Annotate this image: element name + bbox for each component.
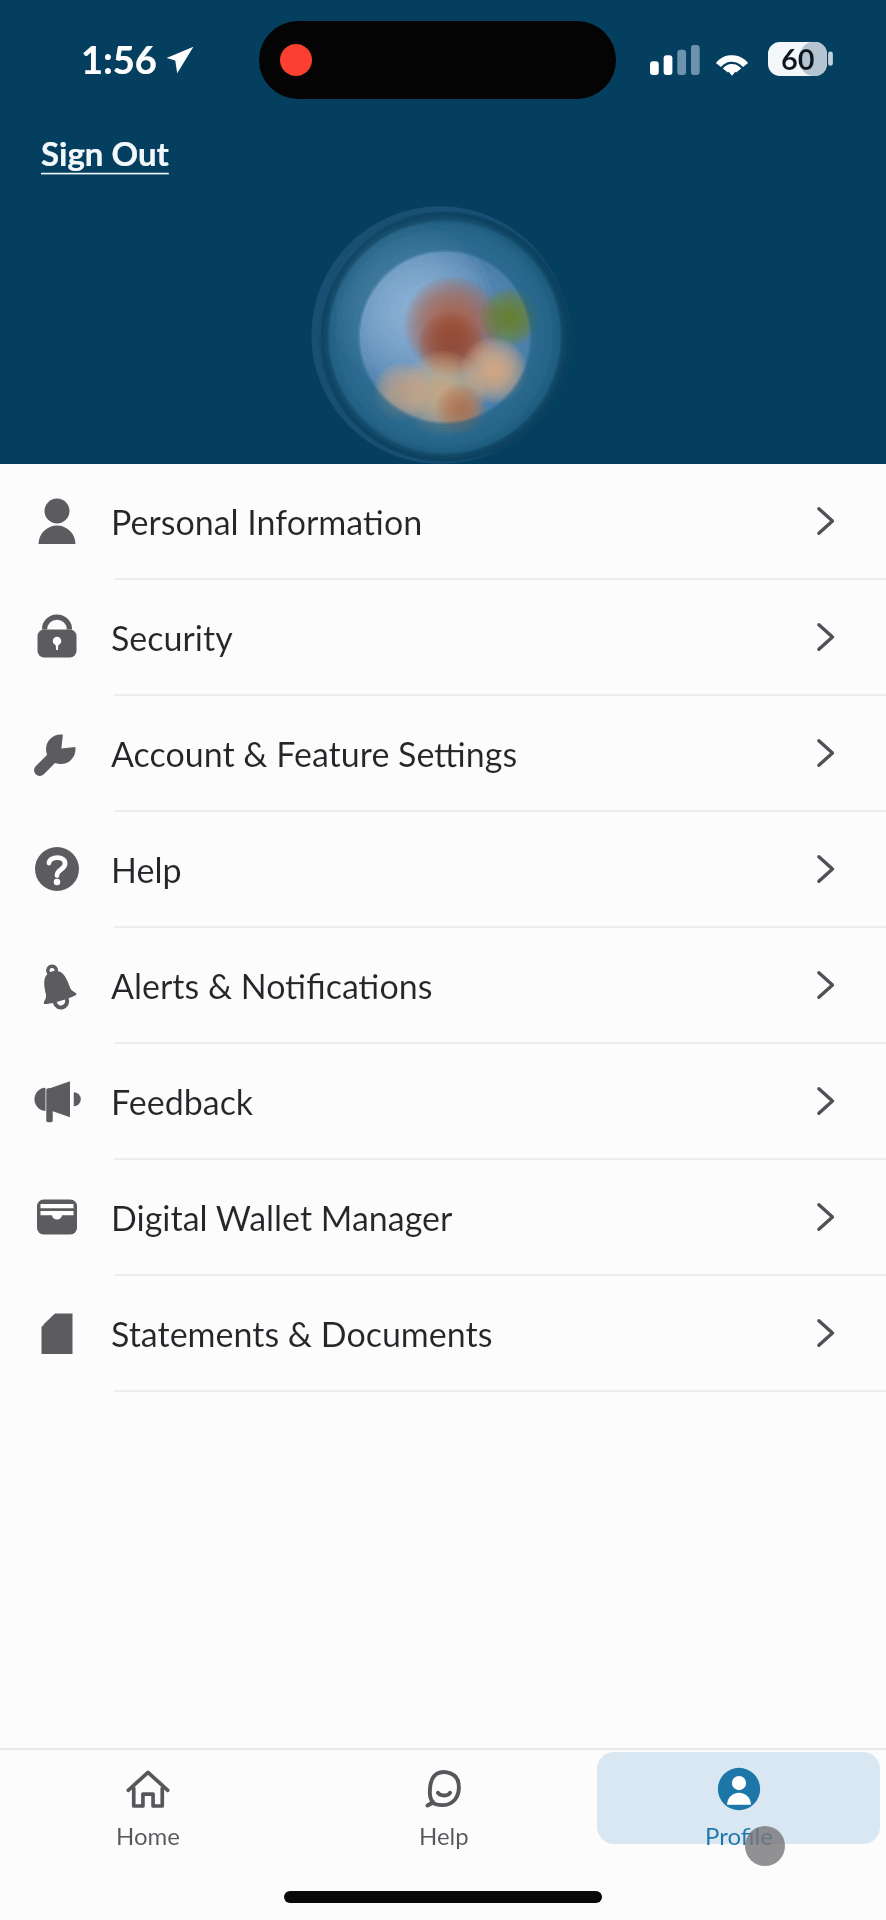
staticText: 60 [781, 41, 815, 75]
button[interactable]: Help [302, 1752, 585, 1844]
staticText: Statements & Documents [111, 1313, 493, 1354]
staticText: Security [111, 617, 233, 658]
button[interactable]: Help [0, 812, 886, 928]
button[interactable]: Personal Information [0, 464, 886, 580]
staticText: Sign Out [41, 133, 169, 173]
button[interactable]: Sign Out [41, 133, 169, 173]
staticText: Help [111, 849, 182, 890]
button[interactable]: Home [6, 1752, 290, 1844]
staticText: Profile [705, 1821, 773, 1850]
button[interactable]: Statements & Documents [0, 1276, 886, 1392]
staticText: Feedback [111, 1081, 254, 1122]
staticText: Digital Wallet Manager [111, 1197, 453, 1238]
staticText: Account & Feature Settings [111, 733, 518, 774]
button[interactable]: Feedback [0, 1044, 886, 1160]
button[interactable]: Alerts & Notifications [0, 928, 886, 1044]
button[interactable]: Account & Feature Settings [0, 696, 886, 812]
staticText: Help [419, 1821, 469, 1850]
button[interactable]: Security [0, 580, 886, 696]
staticText: Home [116, 1821, 180, 1850]
button[interactable]: Digital Wallet Manager [0, 1160, 886, 1276]
staticText: Personal Information [111, 501, 423, 542]
staticText: 1:56 [81, 36, 157, 82]
staticText: Alerts & Notifications [111, 965, 433, 1006]
button[interactable]: Profile [597, 1752, 880, 1844]
